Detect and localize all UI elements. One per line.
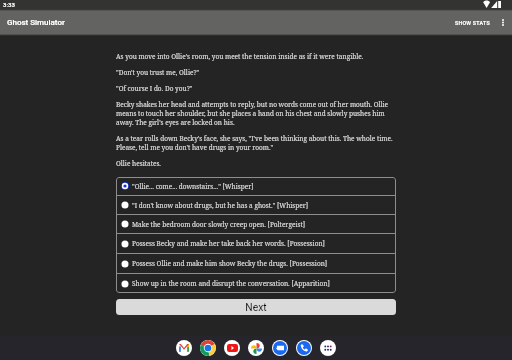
staticText: As you move into Ollie's room, you meet … [116,52,364,61]
staticText: Possess Becky and make her take back her… [132,239,325,248]
button[interactable]: Gmail [176,340,192,356]
staticText: Ollie hesitates. [116,159,161,168]
button[interactable]: "I don't know about drugs, but he has a … [116,196,396,214]
button[interactable]: More options [494,9,512,36]
staticText: Possess Ollie and make him show Becky th… [132,259,328,268]
staticText: "Ollie... come... downstairs..." [Whispe… [132,182,254,191]
button[interactable]: Messages [272,340,288,356]
staticText: "Of course I do. Do you?" [116,84,193,93]
staticText: 3:33 [3,1,15,8]
button[interactable]: Show up in the room and disrupt the conv… [116,274,396,293]
button[interactable]: Chrome [200,340,216,356]
button[interactable]: "Ollie... come... downstairs..." [Whispe… [116,177,396,195]
staticText: Becky shakes her head and attempts to re… [116,100,396,127]
button[interactable]: All apps [320,340,336,356]
button[interactable]: YouTube [224,340,240,356]
staticText: SHOW STATS [455,20,490,26]
button[interactable]: Phone [296,340,312,356]
staticText: Show up in the room and disrupt the conv… [132,279,330,288]
staticText: As a tear rolls down Becky's face, she s… [116,134,396,152]
button[interactable]: SHOW STATS [451,14,494,32]
staticText: Make the bedroom door slowly creep open.… [132,220,306,229]
staticText: Next [245,301,267,313]
staticText: "Don't you trust me, Ollie?" [116,68,200,77]
button[interactable]: Possess Becky and make her take back her… [116,234,396,253]
staticText: "I don't know about drugs, but he has a … [132,201,309,210]
button[interactable]: Next [116,299,396,315]
staticText: Ghost Simulator [7,18,65,27]
button[interactable]: Possess Ollie and make him show Becky th… [116,254,396,273]
button[interactable]: Photos [248,340,264,356]
button[interactable]: Make the bedroom door slowly creep open.… [116,215,396,233]
